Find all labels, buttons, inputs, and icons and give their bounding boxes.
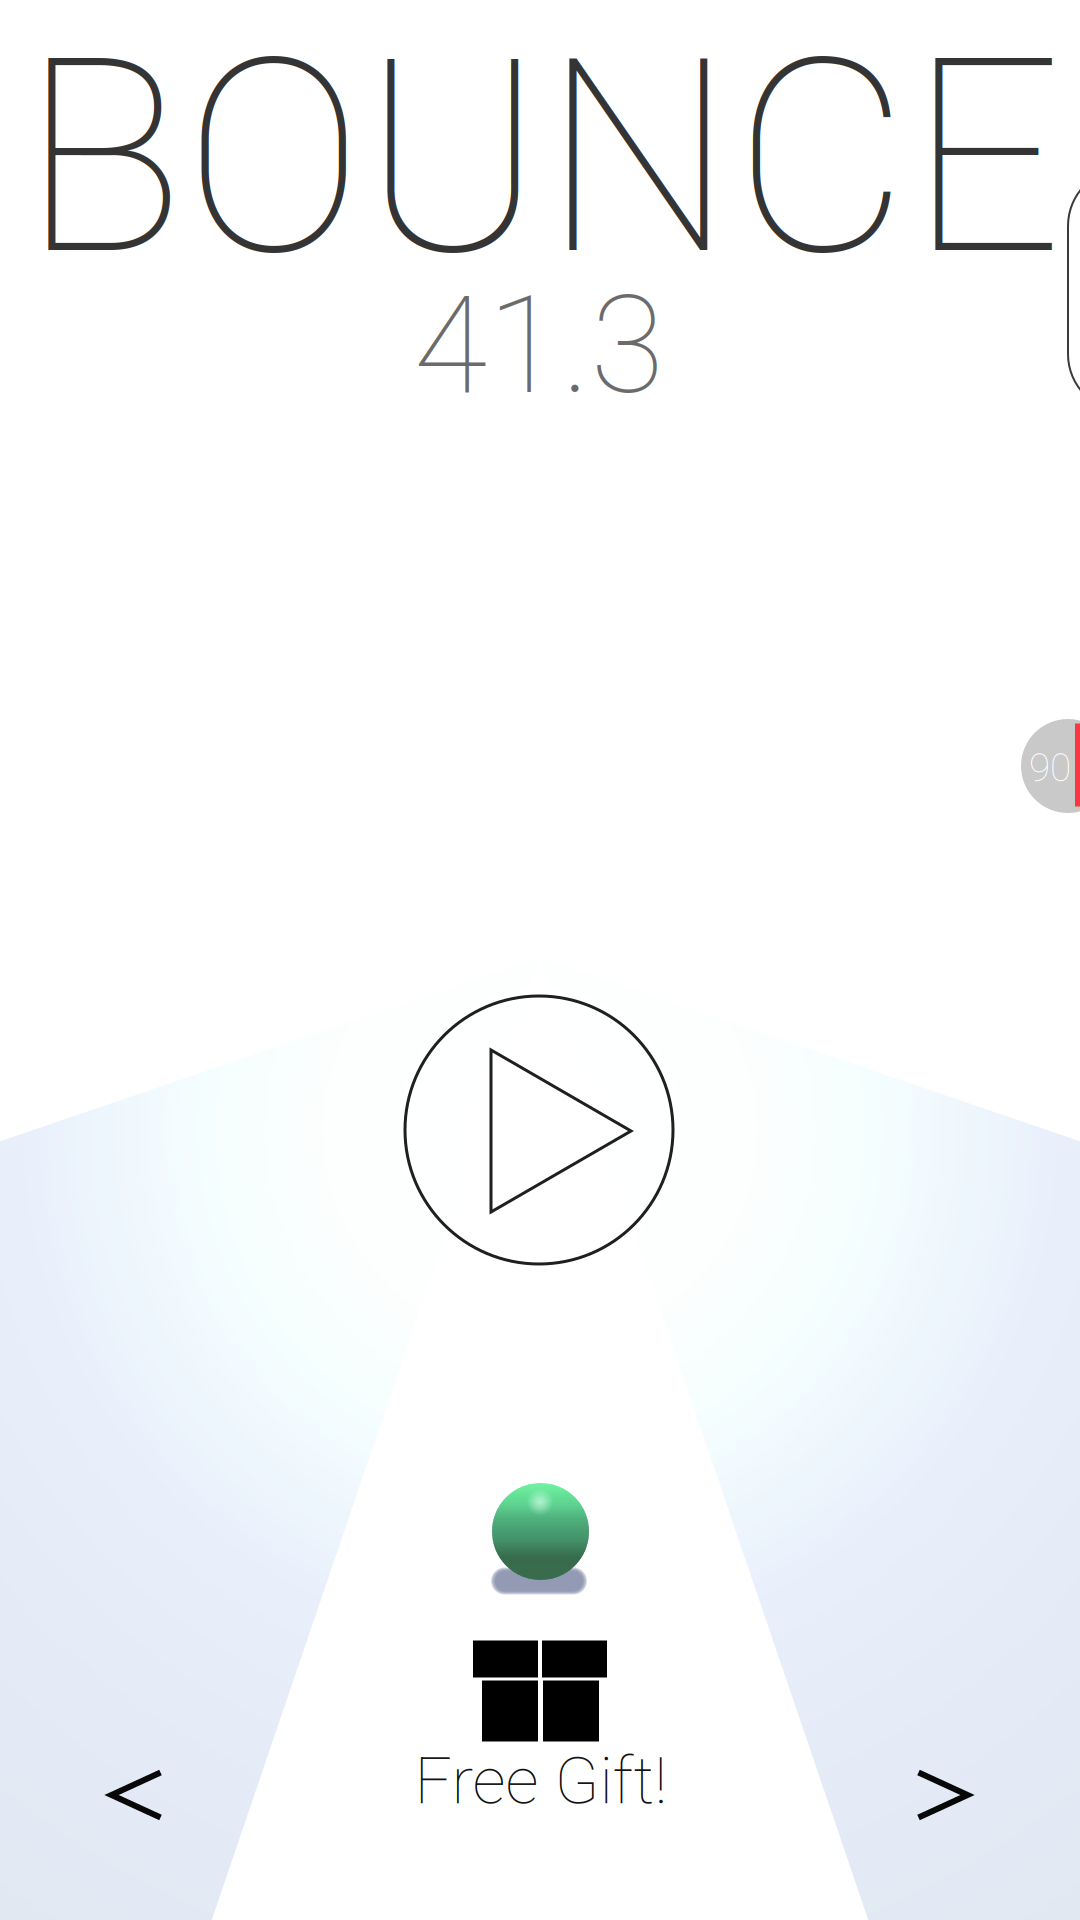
staticText: 90	[1029, 745, 1071, 791]
button[interactable]: Next ball	[918, 1772, 967, 1817]
button[interactable]: Play	[405, 996, 673, 1264]
button[interactable]: Free Gift!	[421, 1640, 661, 1806]
staticText: Free Gift!	[414, 1743, 667, 1819]
button[interactable]: Next theme	[1068, 168, 1080, 412]
staticText: 41.3	[413, 267, 664, 425]
staticText: BOUNCE	[22, 0, 1062, 316]
button[interactable]: 90 coins	[1021, 719, 1080, 813]
button[interactable]: Previous ball	[111, 1772, 160, 1817]
